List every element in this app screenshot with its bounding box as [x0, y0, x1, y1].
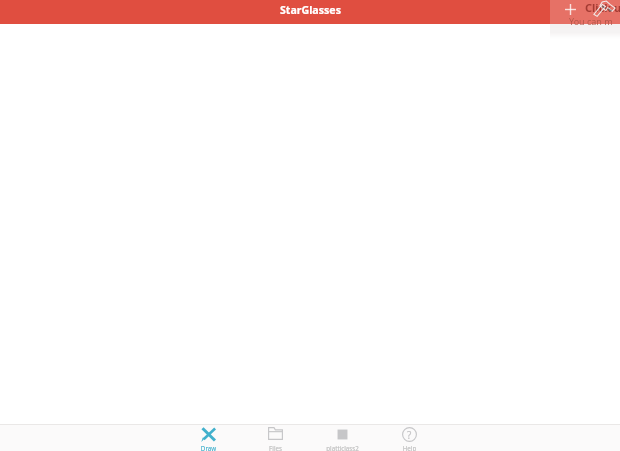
button[interactable]: platticlass2	[309, 425, 376, 451]
staticText: Draw	[175, 444, 242, 451]
other: Add	[565, 4, 576, 15]
button[interactable]: Draw	[175, 425, 242, 451]
staticText: You can m	[569, 15, 613, 27]
staticText: ?	[407, 428, 412, 442]
button[interactable]: Add	[550, 0, 620, 24]
button[interactable]: StarGlasses	[0, 0, 620, 24]
staticText: Files	[242, 444, 309, 451]
staticText: Click u	[585, 0, 620, 15]
staticText: Help	[376, 444, 443, 451]
staticText: StarGlasses	[280, 3, 341, 17]
other: Build tool pointer	[593, 0, 616, 17]
button[interactable]: ?	[376, 425, 443, 451]
button[interactable]: Files	[242, 425, 309, 451]
staticText: platticlass2	[309, 444, 376, 451]
